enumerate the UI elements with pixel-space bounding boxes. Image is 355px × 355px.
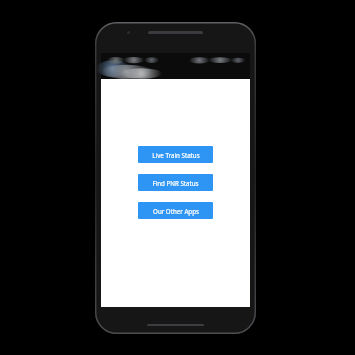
button[interactable]: Our Other Apps — [138, 202, 213, 219]
staticText: Live Train Status — [152, 151, 200, 159]
button[interactable]: Find PNR Status — [138, 174, 213, 191]
staticText: Our Other Apps — [153, 207, 199, 215]
button[interactable]: Live Train Status — [138, 146, 213, 163]
staticText: Find PNR Status — [152, 179, 199, 187]
